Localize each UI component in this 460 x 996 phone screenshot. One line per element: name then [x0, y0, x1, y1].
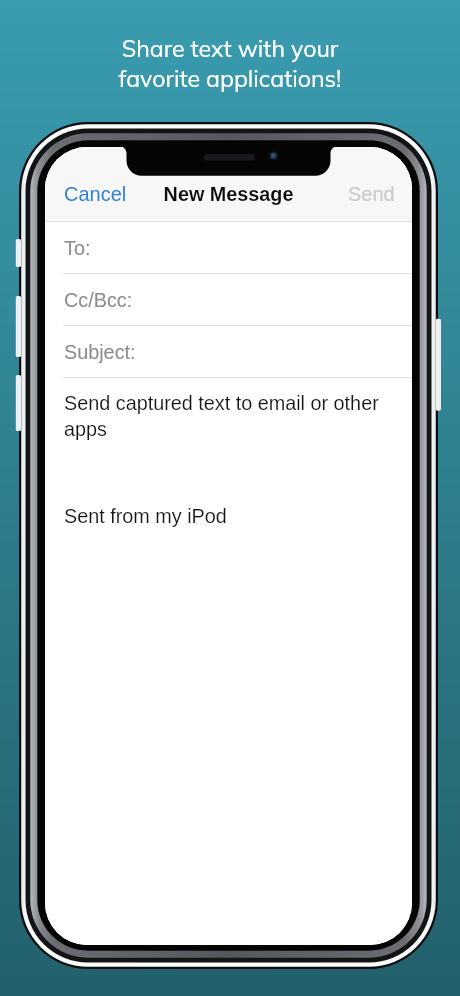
- staticText: Sent from my iPod: [64, 505, 227, 527]
- button[interactable]: Cc/Bcc:: [45, 274, 412, 326]
- button[interactable]: Send: [337, 176, 406, 212]
- staticText: New Message: [45, 183, 412, 205]
- button[interactable]: Subject:: [45, 326, 412, 378]
- staticText: Send captured text to email or other app…: [64, 392, 394, 440]
- staticText: Cancel: [64, 183, 127, 205]
- staticText: Share text with your favorite applicatio…: [0, 34, 460, 93]
- staticText: Cc/Bcc:: [64, 289, 133, 311]
- button[interactable]: To:: [45, 222, 412, 274]
- button[interactable]: Cancel: [53, 176, 138, 212]
- staticText: Subject:: [64, 341, 136, 363]
- staticText: To:: [64, 237, 91, 259]
- staticText: Send: [348, 183, 395, 205]
